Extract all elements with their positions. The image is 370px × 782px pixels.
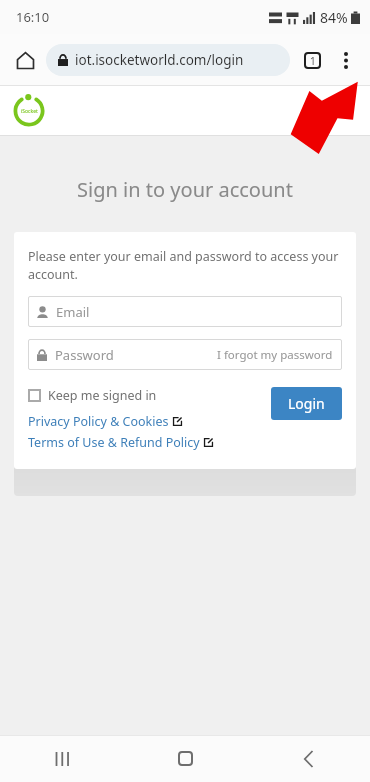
- button[interactable]: I forgot my password: [217, 347, 333, 363]
- button[interactable]: Login: [271, 387, 342, 420]
- staticText: I forgot my password: [217, 347, 333, 363]
- button[interactable]: Privacy Policy & Cookies: [28, 413, 182, 430]
- button[interactable]: Password: [28, 339, 342, 370]
- button[interactable]: Email: [28, 296, 342, 327]
- button[interactable]: Home: [8, 43, 42, 77]
- button[interactable]: Tabs, 1 open: [296, 44, 328, 76]
- staticText: Sign in to your account: [0, 176, 370, 203]
- staticText: iSocket: [21, 108, 38, 115]
- button[interactable]: Recent apps: [0, 735, 124, 782]
- staticText: Privacy Policy & Cookies: [28, 413, 169, 430]
- staticText: iot.isocketworld.com/login: [75, 51, 244, 69]
- staticText: Email: [56, 303, 90, 321]
- staticText: Password: [55, 346, 114, 364]
- button[interactable]: iot.isocketworld.com/login: [46, 44, 290, 76]
- staticText: Please enter your email and password to …: [28, 248, 342, 283]
- button[interactable]: iSocket home: [11, 93, 47, 129]
- button[interactable]: Back: [247, 735, 370, 782]
- button[interactable]: Keep me signed in: [28, 387, 157, 404]
- staticText: 84%: [320, 8, 348, 27]
- staticText: Keep me signed in: [48, 387, 157, 404]
- button[interactable]: Home: [124, 735, 247, 782]
- staticText: 16:10: [16, 8, 50, 26]
- staticText: 1: [310, 54, 316, 68]
- button[interactable]: More options: [330, 44, 362, 76]
- button[interactable]: Terms of Use & Refund Policy: [28, 434, 213, 451]
- staticText: Login: [288, 394, 325, 413]
- staticText: Terms of Use & Refund Policy: [28, 434, 200, 451]
